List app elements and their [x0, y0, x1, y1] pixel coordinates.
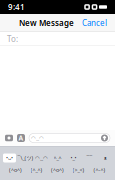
button[interactable]: ᴥ [97, 153, 113, 162]
staticText: ◠‿◠ [31, 134, 44, 142]
staticText: ᴥ [104, 154, 107, 162]
staticText: •_• [70, 154, 76, 162]
staticText: (>_<) [72, 166, 84, 174]
staticText: ◠‿◠ [35, 154, 48, 162]
button[interactable]: (^-^) [89, 165, 110, 174]
staticText: (^o^) [51, 166, 64, 174]
button[interactable]: App Store [17, 134, 25, 142]
staticText: •ᴗ• [6, 154, 13, 162]
staticText: To: [7, 34, 18, 44]
staticText: 9:41 [8, 2, 25, 12]
button[interactable]: ¯¯ [81, 153, 97, 162]
staticText: ¯\_(ツ) [17, 154, 33, 162]
button[interactable]: ^_^ [49, 153, 65, 162]
button[interactable]: ◠‿◠ [33, 153, 49, 162]
staticText: New Message [19, 18, 74, 28]
staticText: ^_^ [53, 154, 61, 162]
button[interactable]: (^_^) [26, 165, 47, 174]
button[interactable]: (^o^) [5, 165, 26, 174]
staticText: (^_^) [30, 166, 42, 174]
button[interactable]: Camera [5, 135, 13, 141]
button[interactable]: Message field [29, 133, 110, 142]
staticText: A [18, 134, 23, 142]
staticText: ¯¯ [86, 154, 92, 162]
button[interactable]: •_• [65, 153, 81, 162]
button[interactable]: ¯\_(ツ) [17, 153, 33, 162]
staticText: (^o^) [9, 166, 22, 174]
button[interactable]: •ᴗ• [1, 153, 17, 162]
button[interactable]: To: [0, 32, 115, 46]
staticText: (^-^) [93, 166, 105, 174]
button[interactable]: Cancel [78, 15, 111, 31]
button[interactable]: (>_<) [68, 165, 89, 174]
staticText: Cancel [82, 18, 107, 28]
button[interactable]: (^o^) [47, 165, 68, 174]
